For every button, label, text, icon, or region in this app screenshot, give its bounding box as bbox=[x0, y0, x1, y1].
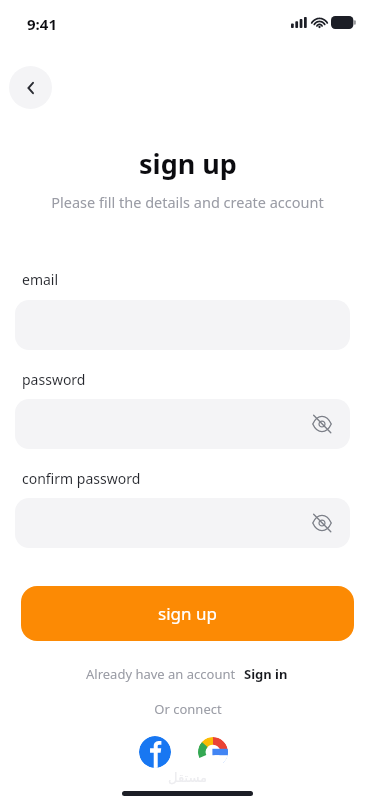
button[interactable]: Back bbox=[9, 66, 52, 109]
staticText: Please fill the details and create accou… bbox=[51, 192, 324, 212]
staticText: مستقل bbox=[168, 770, 207, 785]
staticText: password bbox=[22, 370, 86, 389]
staticText: 9:41 bbox=[27, 14, 57, 34]
staticText: Or connect bbox=[154, 700, 222, 718]
button[interactable]: Continue with Google bbox=[198, 737, 228, 767]
button[interactable]: sign up bbox=[21, 586, 354, 641]
button[interactable]: Show password bbox=[307, 409, 337, 439]
staticText: sign up bbox=[158, 602, 217, 625]
staticText: sign up bbox=[139, 145, 237, 182]
staticText: confirm password bbox=[22, 469, 141, 488]
button[interactable]: Continue with Facebook bbox=[139, 736, 171, 768]
staticText: Sign in bbox=[244, 665, 288, 683]
staticText: Already have an account bbox=[86, 665, 236, 683]
button[interactable]: Sign in bbox=[243, 663, 289, 685]
button[interactable]: Show password bbox=[15, 399, 350, 449]
staticText: email bbox=[22, 270, 59, 289]
button[interactable]: Show confirm password bbox=[307, 508, 337, 538]
button[interactable]: Show confirm password bbox=[15, 498, 350, 548]
